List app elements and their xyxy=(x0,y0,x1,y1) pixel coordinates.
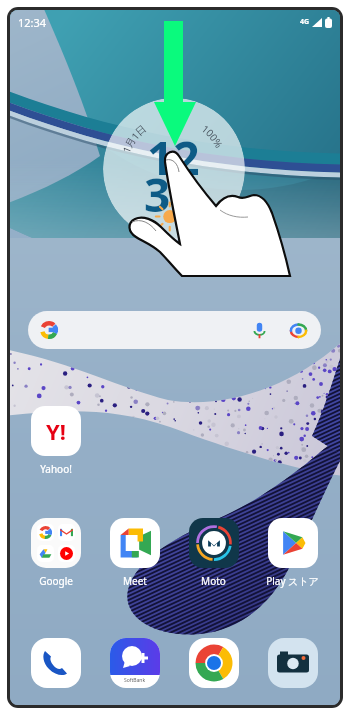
button[interactable] xyxy=(28,311,321,349)
staticText: 4G xyxy=(300,17,310,27)
staticText: Y! xyxy=(46,416,66,446)
button[interactable]: 12 xyxy=(103,98,245,240)
button[interactable]: Play ストア xyxy=(253,518,332,588)
button[interactable]: Google xyxy=(16,518,95,588)
staticText: Moto xyxy=(201,574,226,588)
staticText: 12:34 xyxy=(18,15,47,30)
staticText: Yahoo! xyxy=(40,462,72,476)
button[interactable]: Y! xyxy=(16,406,95,476)
staticText: 12 xyxy=(147,126,200,189)
staticText: Google xyxy=(39,574,73,588)
staticText: 34 xyxy=(144,163,197,226)
button[interactable]: Chrome xyxy=(174,638,253,688)
button[interactable]: Camera xyxy=(253,638,332,688)
button[interactable]: Phone xyxy=(16,638,95,688)
staticText: SoftBank xyxy=(124,677,146,684)
button[interactable]: SoftBank Messages xyxy=(95,638,174,688)
button[interactable]: Meet xyxy=(95,518,174,588)
button[interactable]: Moto xyxy=(174,518,253,588)
staticText: Meet xyxy=(123,574,147,588)
staticText: Play ストア xyxy=(266,574,319,588)
